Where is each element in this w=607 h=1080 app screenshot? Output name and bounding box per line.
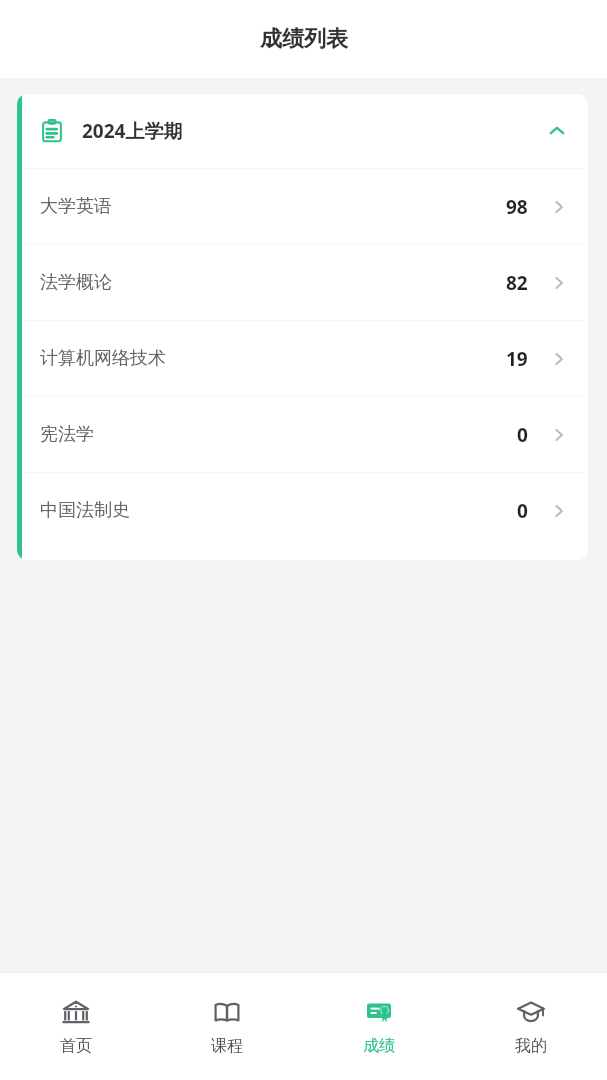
button[interactable]: 计算机网络技术 [22, 321, 588, 396]
staticText: 大学英语 [40, 195, 112, 218]
staticText: 0 [517, 498, 528, 524]
staticText: 成绩列表 [260, 25, 348, 53]
staticText: 2024上学期 [82, 118, 183, 144]
staticText: 98 [506, 194, 528, 220]
staticText: 中国法制史 [40, 499, 130, 522]
staticText: 我的 [515, 1036, 547, 1056]
button[interactable]: 2024上学期 [22, 94, 588, 168]
staticText: 19 [506, 346, 528, 372]
button[interactable]: 法学概论 [22, 245, 588, 320]
staticText: 首页 [60, 1036, 92, 1056]
staticText: 计算机网络技术 [40, 347, 166, 370]
button[interactable]: 大学英语 [22, 169, 588, 244]
button[interactable]: 课程 [151, 997, 303, 1056]
button[interactable]: 成绩 [303, 997, 455, 1056]
staticText: 法学概论 [40, 271, 112, 294]
button[interactable]: 首页 [0, 997, 151, 1056]
button[interactable]: 宪法学 [22, 397, 588, 472]
staticText: 0 [517, 422, 528, 448]
staticText: 宪法学 [40, 423, 94, 446]
staticText: 课程 [211, 1036, 243, 1056]
button[interactable]: 我的 [455, 997, 607, 1056]
staticText: 82 [506, 270, 528, 296]
button[interactable]: 中国法制史 [22, 473, 588, 548]
other: Collapse [546, 120, 568, 142]
staticText: 成绩 [363, 1036, 395, 1056]
